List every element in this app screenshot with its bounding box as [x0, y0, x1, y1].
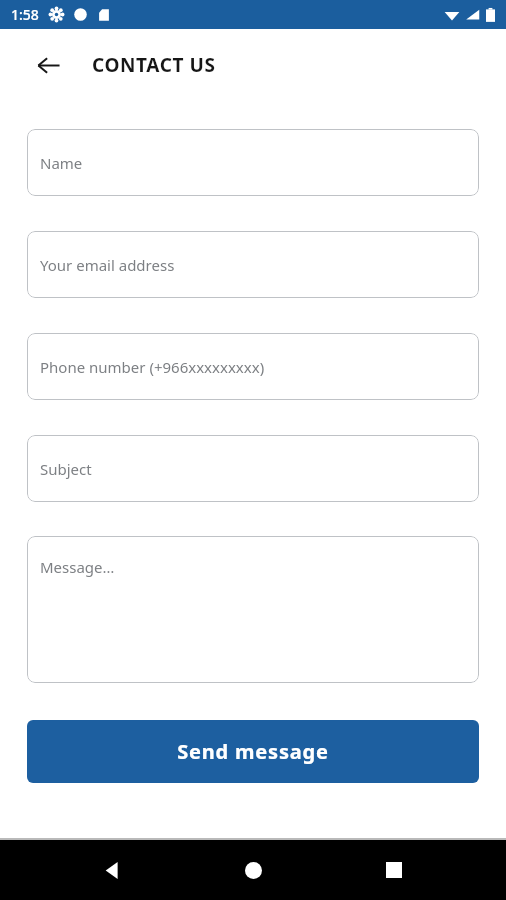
button[interactable]: Back	[26, 43, 70, 87]
button[interactable]: Your email address	[27, 231, 479, 298]
button[interactable]: Back	[83, 841, 141, 899]
staticText: Your email address	[40, 255, 175, 275]
button[interactable]: Send message	[27, 720, 479, 783]
staticText: Message…	[40, 557, 115, 577]
button[interactable]: Name	[27, 129, 479, 196]
staticText: Subject	[40, 459, 92, 479]
button[interactable]: Subject	[27, 435, 479, 502]
button[interactable]: Recent apps	[365, 841, 423, 899]
button[interactable]: Message…	[27, 536, 479, 683]
staticText: Phone number (+966xxxxxxxxx)	[40, 357, 265, 377]
staticText: CONTACT US	[92, 52, 216, 78]
staticText: Send message	[177, 738, 329, 765]
staticText: 1:58	[11, 5, 39, 24]
button[interactable]: Phone number (+966xxxxxxxxx)	[27, 333, 479, 400]
button[interactable]: Home	[224, 841, 282, 899]
staticText: Name	[40, 153, 83, 173]
